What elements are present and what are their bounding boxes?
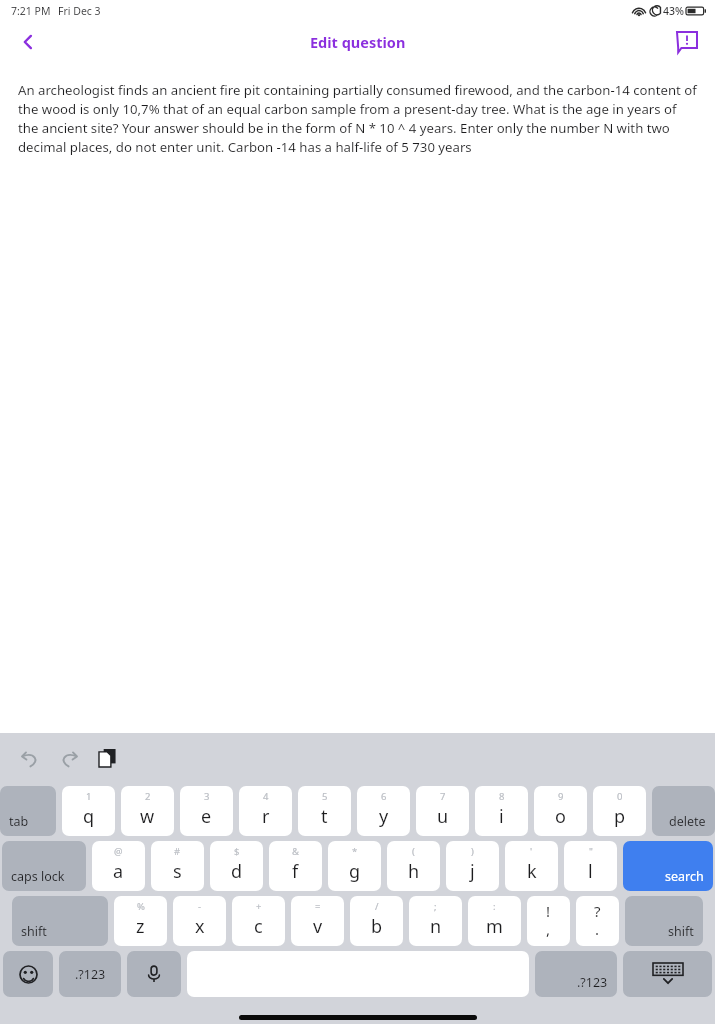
- button[interactable]: 3: [180, 786, 233, 836]
- staticText: delete: [669, 813, 706, 830]
- button[interactable]: &: [269, 841, 322, 891]
- staticText: q: [83, 804, 95, 829]
- button[interactable]: 7: [416, 786, 469, 836]
- staticText: w: [140, 804, 155, 829]
- button[interactable]: !: [527, 896, 570, 946]
- button[interactable]: %: [114, 896, 167, 946]
- button[interactable]: 6: [357, 786, 410, 836]
- staticText: l: [588, 859, 593, 884]
- staticText: !: [546, 901, 551, 921]
- staticText: y: [379, 804, 389, 829]
- button[interactable]: Voice input: [127, 951, 181, 997]
- staticText: ": [589, 845, 593, 858]
- button[interactable]: /: [350, 896, 403, 946]
- staticText: n: [430, 914, 442, 939]
- button[interactable]: search: [623, 841, 713, 891]
- button[interactable]: tab: [0, 786, 56, 836]
- button[interactable]: #: [151, 841, 204, 891]
- staticText: caps lock: [11, 868, 65, 885]
- button[interactable]: Back: [8, 22, 48, 62]
- button[interactable]: Redo: [51, 740, 87, 776]
- staticText: ': [530, 845, 533, 858]
- button[interactable]: caps lock: [2, 841, 86, 891]
- staticText: ,: [546, 919, 551, 939]
- staticText: r: [262, 804, 270, 829]
- button[interactable]: ": [564, 841, 617, 891]
- staticText: 7: [440, 790, 446, 803]
- staticText: .?123: [577, 974, 608, 991]
- staticText: *: [352, 845, 358, 858]
- staticText: .?123: [75, 966, 106, 983]
- staticText: 7:21 PM: [11, 4, 51, 18]
- staticText: (: [412, 845, 415, 858]
- staticText: d: [231, 859, 243, 884]
- button[interactable]: +: [232, 896, 285, 946]
- staticText: t: [321, 804, 328, 829]
- staticText: 3: [204, 790, 210, 803]
- button[interactable]: =: [291, 896, 344, 946]
- button[interactable]: (: [387, 841, 440, 891]
- staticText: 9: [558, 790, 564, 803]
- staticText: u: [437, 804, 449, 829]
- staticText: #: [174, 845, 181, 858]
- button[interactable]: 4: [239, 786, 292, 836]
- staticText: e: [201, 804, 212, 829]
- button[interactable]: -: [173, 896, 226, 946]
- button[interactable]: delete: [652, 786, 715, 836]
- button[interactable]: Report question: [667, 22, 707, 62]
- staticText: 1: [86, 790, 92, 803]
- staticText: &: [292, 845, 299, 858]
- staticText: Edit question: [310, 32, 406, 52]
- staticText: 8: [499, 790, 505, 803]
- button[interactable]: Hide keyboard: [623, 951, 712, 997]
- staticText: x: [195, 914, 205, 939]
- staticText: 6: [381, 790, 387, 803]
- button[interactable]: .?123: [535, 951, 617, 997]
- button[interactable]: :: [468, 896, 521, 946]
- button[interactable]: 5: [298, 786, 351, 836]
- staticText: search: [665, 868, 704, 885]
- button[interactable]: 0: [593, 786, 646, 836]
- staticText: /: [375, 900, 379, 913]
- button[interactable]: Emoji: [3, 951, 53, 997]
- staticText: shift: [21, 923, 47, 940]
- staticText: ;: [434, 900, 437, 913]
- staticText: o: [555, 804, 566, 829]
- button[interactable]: .?123: [59, 951, 121, 997]
- button[interactable]: ): [446, 841, 499, 891]
- staticText: Fri Dec 3: [58, 4, 101, 18]
- staticText: =: [315, 900, 321, 913]
- staticText: a: [113, 859, 124, 884]
- staticText: s: [173, 859, 182, 884]
- staticText: m: [486, 914, 503, 939]
- staticText: $: [234, 845, 240, 858]
- button[interactable]: Undo: [12, 740, 48, 776]
- staticText: %: [137, 900, 145, 913]
- staticText: f: [292, 859, 299, 884]
- button[interactable]: ': [505, 841, 558, 891]
- button[interactable]: $: [210, 841, 263, 891]
- staticText: c: [254, 914, 263, 939]
- staticText: z: [136, 914, 145, 939]
- button[interactable]: ?: [576, 896, 619, 946]
- button[interactable]: ;: [409, 896, 462, 946]
- button[interactable]: 9: [534, 786, 587, 836]
- button[interactable]: 1: [62, 786, 115, 836]
- staticText: 2: [145, 790, 151, 803]
- staticText: :: [493, 900, 496, 913]
- staticText: j: [470, 859, 475, 884]
- staticText: An archeologist finds an ancient fire pi…: [18, 81, 699, 155]
- staticText: 43%: [663, 4, 684, 18]
- button[interactable]: @: [92, 841, 145, 891]
- staticText: p: [614, 804, 626, 829]
- button[interactable]: 8: [475, 786, 528, 836]
- button[interactable]: shift: [625, 896, 703, 946]
- button[interactable]: shift: [12, 896, 108, 946]
- button[interactable]: 2: [121, 786, 174, 836]
- button[interactable]: *: [328, 841, 381, 891]
- staticText: v: [313, 914, 323, 939]
- staticText: ?: [594, 901, 601, 921]
- staticText: 4: [263, 790, 269, 803]
- button[interactable]: Paste: [90, 740, 126, 776]
